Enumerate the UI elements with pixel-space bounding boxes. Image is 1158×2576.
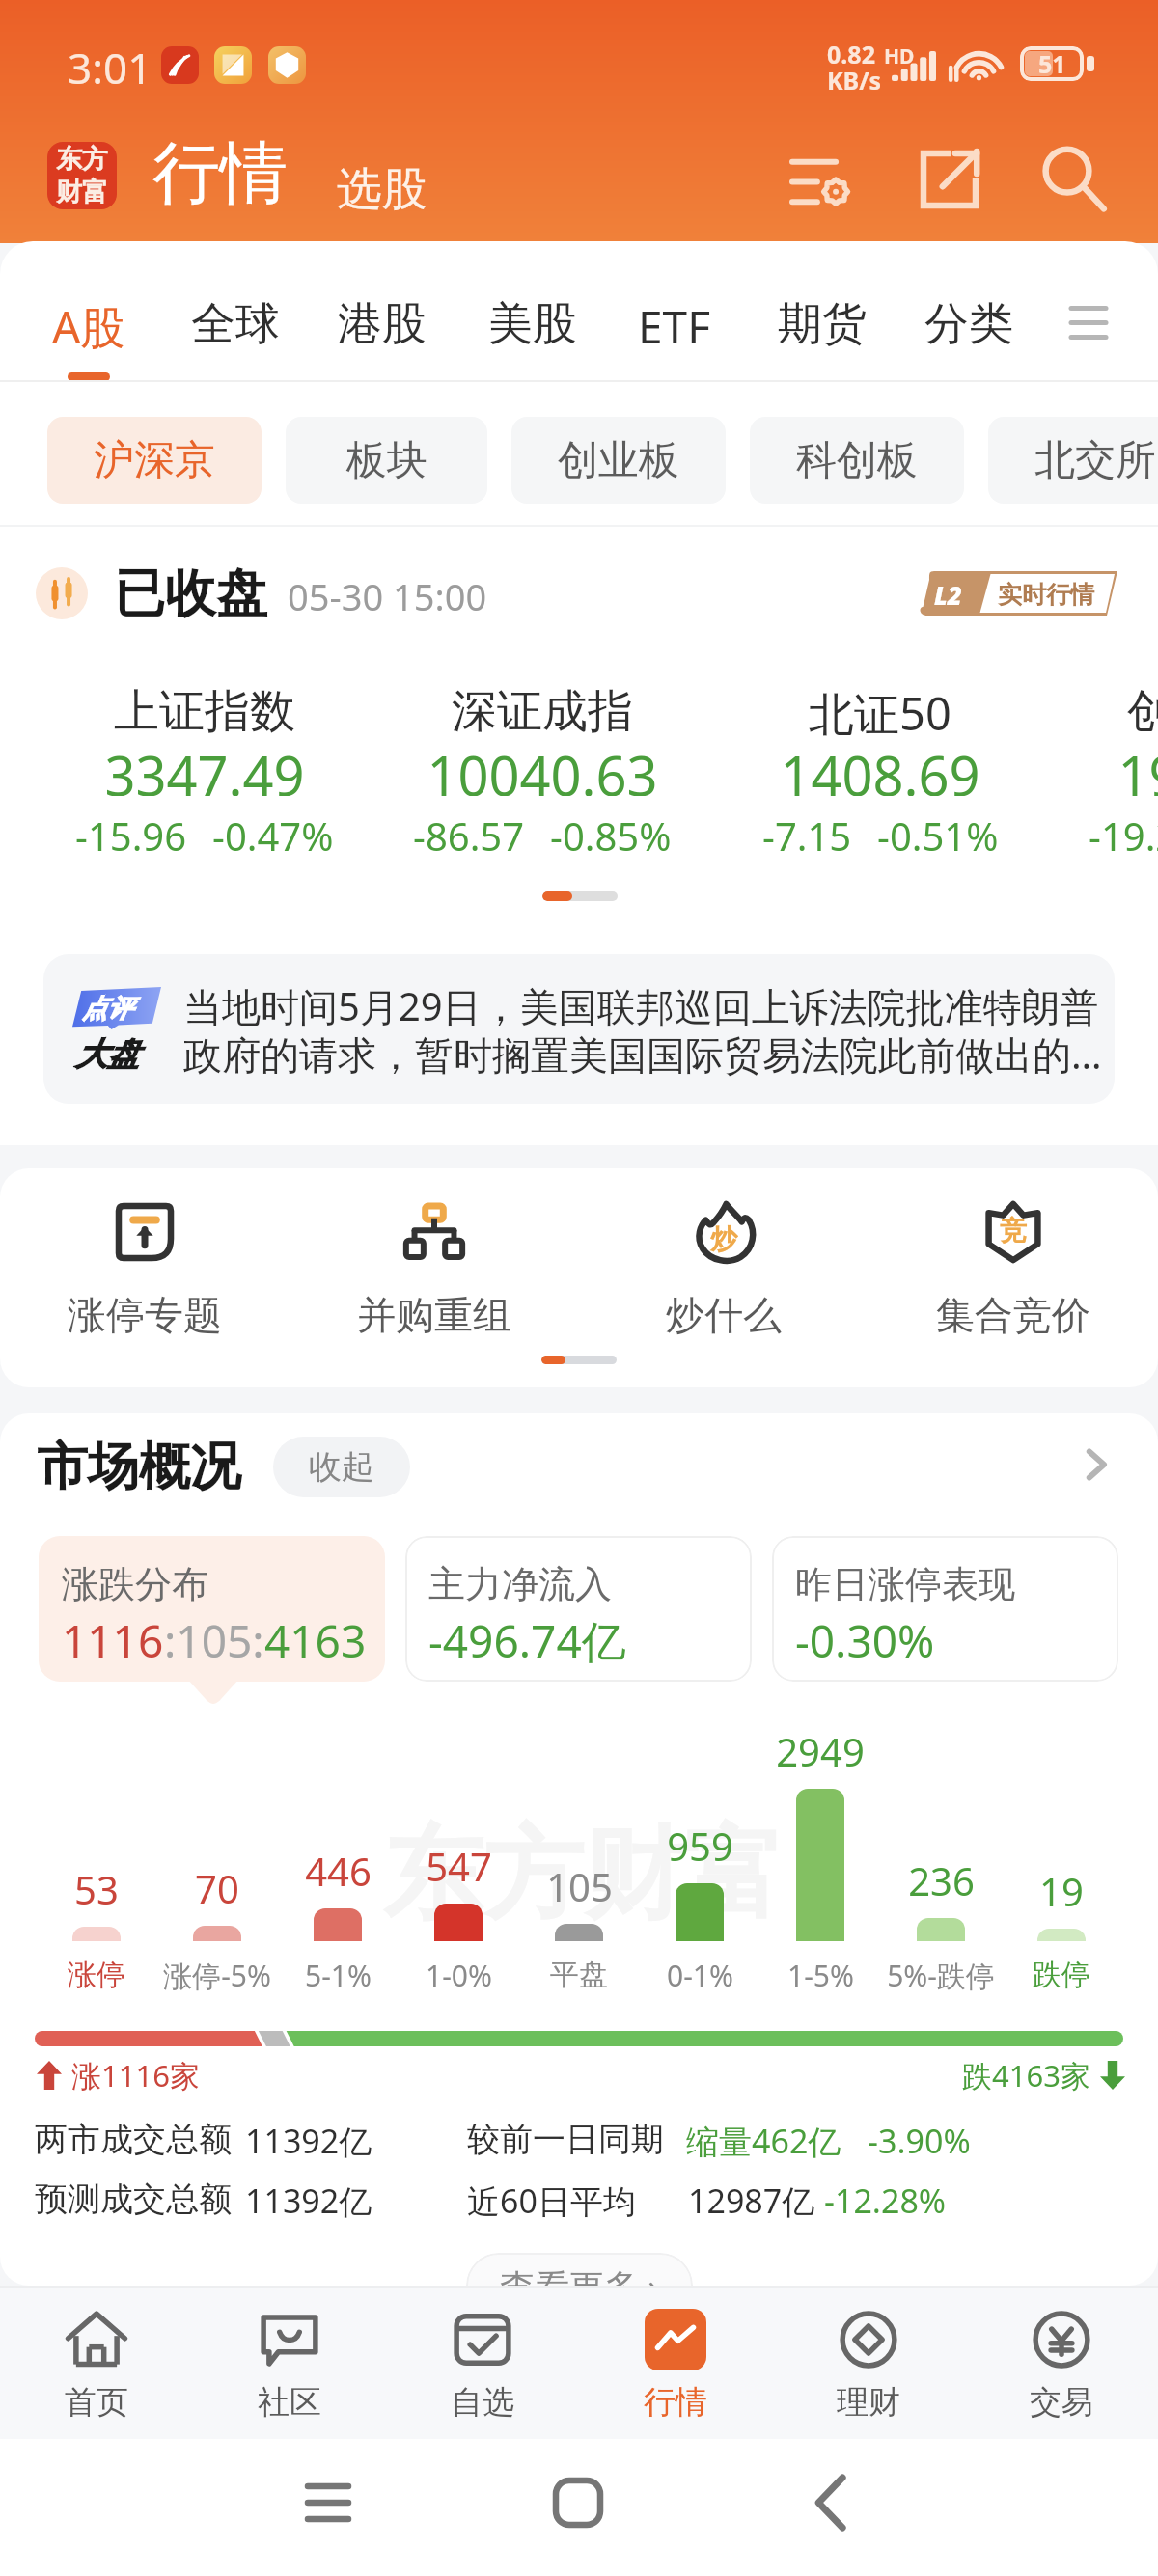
button[interactable]: 行情: [579, 2286, 772, 2439]
button[interactable]: 首页: [0, 2286, 193, 2439]
staticText: KB/s: [827, 64, 882, 96]
staticText: 涨停专题: [68, 1291, 222, 1339]
staticText: 期货: [778, 296, 867, 352]
staticText: 跌4163家: [962, 2055, 1090, 2096]
staticText: 已收盘: [114, 562, 267, 626]
staticText: 19: [1039, 1865, 1084, 1917]
button[interactable]: 交易: [965, 2286, 1158, 2439]
button[interactable]: Back: [787, 2459, 874, 2546]
button[interactable]: 沪深京: [47, 417, 262, 504]
staticText: 集合竞价: [936, 1291, 1090, 1339]
button[interactable]: 竞: [907, 1202, 1119, 1339]
staticText: 美股: [488, 296, 577, 352]
staticText: 5-1%: [305, 1956, 372, 1995]
button[interactable]: 并购重组: [328, 1202, 540, 1339]
button[interactable]: 北交所: [988, 417, 1158, 504]
button[interactable]: 涨停专题: [39, 1202, 251, 1339]
staticText: 10040.63: [427, 738, 658, 796]
staticText: 并购重组: [357, 1291, 511, 1339]
staticText: -3.90%: [868, 2119, 971, 2163]
staticText: 较前一日同期: [467, 2119, 664, 2160]
staticText: 涨停: [68, 1957, 125, 1993]
staticText: 上证指数: [114, 683, 295, 740]
staticText: 北证50: [809, 682, 951, 740]
staticText: 105: [546, 1860, 613, 1912]
button[interactable]: 炒: [618, 1202, 830, 1339]
staticText: 实时行情: [998, 580, 1094, 610]
button[interactable]: Recents: [285, 2459, 372, 2546]
button[interactable]: Search: [1033, 139, 1116, 222]
staticText: ETF: [638, 296, 711, 357]
button[interactable]: [43, 954, 1115, 1104]
staticText: 跌停: [1033, 1957, 1090, 1993]
staticText: 2949: [776, 1725, 865, 1777]
staticText: 70: [195, 1862, 239, 1914]
staticText: 近60日平均: [467, 2179, 636, 2223]
button[interactable]: 深证成指: [373, 682, 711, 740]
staticText: 科创板: [796, 435, 918, 486]
staticText: 沪深京: [94, 435, 215, 486]
button[interactable]: A股: [41, 292, 137, 361]
staticText: 行情: [644, 2382, 707, 2423]
button[interactable]: ETF: [626, 292, 723, 361]
staticText: 行情: [152, 131, 288, 216]
staticText: 市场概况: [37, 1435, 241, 1499]
button[interactable]: Filter settings: [784, 143, 861, 220]
staticText: -0.51%: [877, 809, 999, 853]
button[interactable]: More tabs: [1052, 291, 1125, 353]
staticText: 3:01: [68, 39, 152, 96]
staticText: 两市成交总额: [35, 2119, 232, 2160]
staticText: 创业板: [558, 435, 679, 486]
staticText: 05-30 15:00: [288, 571, 487, 621]
staticText: -12.28%: [824, 2179, 947, 2223]
staticText: 446: [305, 1845, 372, 1897]
button[interactable]: 分类: [913, 292, 1025, 356]
button[interactable]: 查看更多 ›: [466, 2253, 693, 2318]
button[interactable]: 创业板: [511, 417, 726, 504]
staticText: 11392亿: [245, 2119, 372, 2163]
button[interactable]: 科创板: [750, 417, 964, 504]
staticText: 社区: [258, 2382, 321, 2423]
staticText: 竞: [1000, 1214, 1027, 1247]
staticText: -19.22: [1089, 809, 1158, 853]
button[interactable]: 期货: [766, 292, 878, 356]
staticText: 查看更多 ›: [500, 2262, 659, 2310]
staticText: 首页: [65, 2382, 128, 2423]
staticText: 全球: [191, 296, 280, 352]
button[interactable]: 理财: [772, 2286, 965, 2439]
staticText: 1-5%: [787, 1956, 854, 1995]
staticText: -0.30%: [795, 1610, 935, 1671]
staticText: 缩量462亿: [686, 2119, 841, 2163]
button[interactable]: 创业板指: [1049, 682, 1158, 740]
button[interactable]: 社区: [193, 2286, 386, 2439]
staticText: 1999.18: [1117, 738, 1158, 796]
button[interactable]: 板块: [286, 417, 487, 504]
button[interactable]: 昨日涨停表现: [772, 1536, 1118, 1682]
staticText: 53: [74, 1863, 119, 1915]
button[interactable]: 主力净流入: [405, 1536, 752, 1682]
staticText: 东方财富: [383, 1812, 785, 1938]
staticText: 自选: [451, 2382, 514, 2423]
staticText: 涨1116家: [71, 2055, 200, 2096]
button[interactable]: 上证指数: [36, 682, 373, 740]
button[interactable]: 全球: [179, 292, 291, 356]
button[interactable]: Share: [911, 141, 988, 218]
button[interactable]: L2: [919, 571, 1117, 616]
button[interactable]: 收起: [273, 1437, 410, 1497]
staticText: HD: [884, 42, 915, 70]
staticText: -86.57: [413, 809, 525, 853]
staticText: 4163: [264, 1610, 367, 1671]
button[interactable]: 港股: [326, 292, 438, 356]
button[interactable]: Home: [535, 2459, 621, 2546]
staticText: 昨日涨停表现: [795, 1561, 1015, 1607]
staticText: 当地时间5月29日，美国联邦巡回上诉法院批准特朗普: [183, 979, 1099, 1032]
button[interactable]: 涨跌分布: [39, 1536, 385, 1682]
button[interactable]: 美股: [477, 292, 589, 356]
staticText: 港股: [338, 296, 427, 352]
staticText: 收起: [309, 1446, 374, 1488]
staticText: 财富: [56, 176, 108, 208]
button[interactable]: 北证50: [711, 682, 1049, 740]
staticText: 选股: [337, 161, 427, 218]
button[interactable]: 自选: [386, 2286, 579, 2439]
button[interactable]: Expand: [1069, 1438, 1123, 1492]
